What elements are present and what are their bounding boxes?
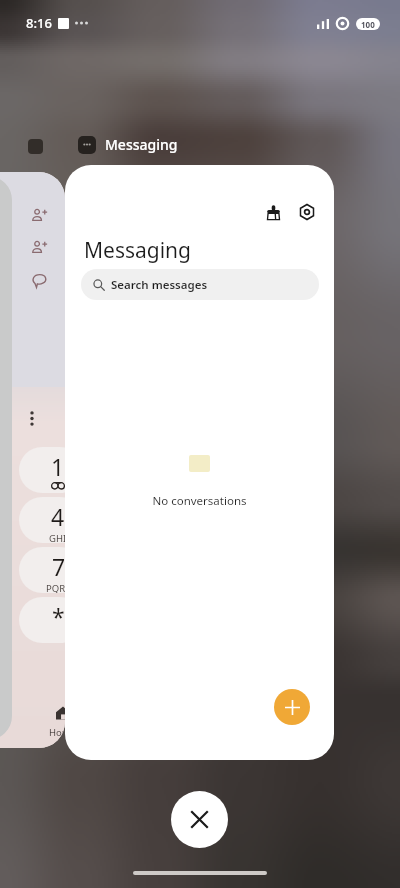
staticText: Messaging xyxy=(84,236,192,265)
button[interactable]: New conversation xyxy=(274,689,310,725)
button[interactable]: Search messages xyxy=(81,269,319,300)
staticText: * xyxy=(52,601,65,632)
staticText: 4 xyxy=(51,501,65,532)
staticText: 100 xyxy=(361,19,375,30)
staticText: GHI xyxy=(49,532,65,543)
button[interactable]: 7 xyxy=(19,547,65,593)
button[interactable]: 4 xyxy=(19,497,65,543)
button[interactable]: * xyxy=(19,597,65,643)
staticText: 7 xyxy=(52,551,65,582)
button[interactable]: Clean up xyxy=(260,199,286,225)
staticText: 8:16 xyxy=(26,14,52,32)
staticText: Home xyxy=(49,726,65,739)
staticText: PQRS xyxy=(46,582,65,593)
staticText: 1 xyxy=(51,451,65,482)
staticText: Messaging xyxy=(105,135,178,154)
button[interactable]: Settings xyxy=(294,199,320,225)
button[interactable]: 1 xyxy=(19,447,65,493)
staticText: Search messages xyxy=(111,277,208,293)
staticText: No conversations xyxy=(152,493,247,509)
button[interactable]: Clear all xyxy=(171,791,228,848)
